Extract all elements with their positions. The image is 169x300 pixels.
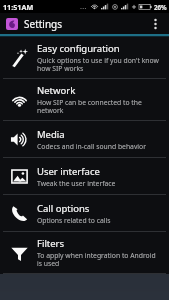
button[interactable]: Network: [0, 79, 169, 120]
staticText: Media: [37, 128, 65, 141]
button[interactable]: User interface: [0, 158, 169, 194]
staticText: Call options: [37, 202, 90, 215]
staticText: 26%: [154, 3, 167, 11]
staticText: Network: [37, 84, 76, 97]
staticText: Settings: [24, 17, 63, 31]
staticText: Codecs and in-call sound behavior: [37, 142, 147, 151]
staticText: Quick options to use if you don't know h…: [37, 56, 161, 73]
staticText: Tweak the user interface: [37, 179, 116, 188]
staticText: Easy configuration: [37, 42, 120, 55]
button[interactable]: Easy configuration: [0, 37, 169, 78]
staticText: How SIP can be connected to the network: [37, 98, 161, 115]
button[interactable]: Media: [0, 121, 169, 157]
button[interactable]: Filters: [0, 232, 169, 273]
staticText: Options related to calls: [37, 216, 111, 225]
staticText: Filters: [37, 237, 65, 250]
staticText: 11:51AM: [3, 2, 34, 12]
staticText: To apply when integration to Android is …: [37, 251, 161, 268]
button[interactable]: Call options: [0, 195, 169, 231]
button[interactable]: More options: [147, 13, 163, 34]
staticText: User interface: [37, 165, 100, 178]
